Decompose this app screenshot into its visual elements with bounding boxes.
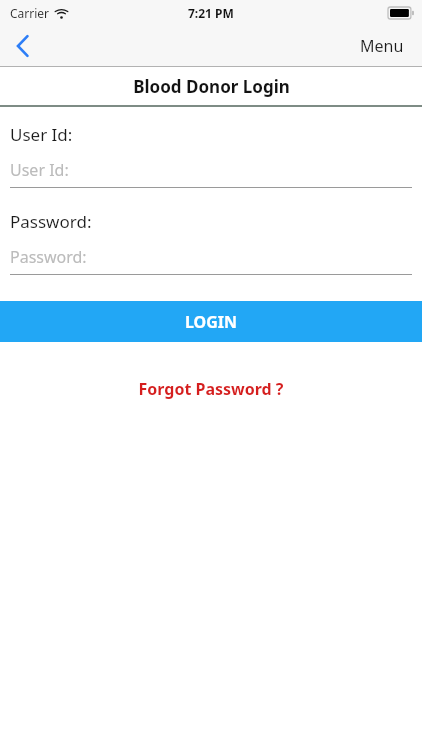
button[interactable]: User Id: [10,159,412,188]
staticText: Password: [10,210,92,233]
staticText: Carrier [10,5,50,21]
staticText: Password: [10,246,87,268]
staticText: Blood Donor Login [133,75,290,98]
staticText: User Id: [10,159,69,181]
staticText: 7:21 PM [188,5,234,21]
staticText: Forgot Password ? [138,378,284,400]
staticText: User Id: [10,123,73,146]
button[interactable]: Menu [342,26,422,66]
button[interactable]: Forgot Password ? [126,374,296,404]
staticText: LOGIN [185,311,238,333]
button[interactable]: LOGIN [0,301,422,342]
button[interactable]: Back [0,26,46,66]
button[interactable]: Password: [10,246,412,275]
staticText: Menu [360,35,404,57]
